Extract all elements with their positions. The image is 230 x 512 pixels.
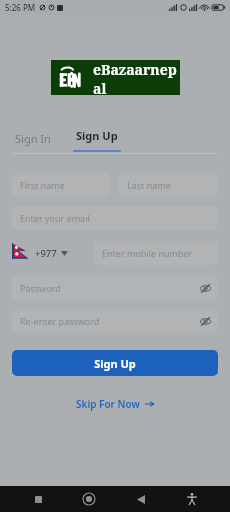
staticText: 5:26 PM	[5, 2, 36, 13]
button[interactable]: Recents	[25, 486, 51, 512]
staticText: Sign Up	[94, 356, 136, 371]
button[interactable]: Back	[128, 486, 154, 512]
staticText: Re-enter password	[20, 315, 100, 327]
button[interactable]: Enter mobile number	[94, 241, 218, 265]
staticText: Enter mobile number	[102, 247, 193, 259]
button[interactable]: Sign Up	[72, 124, 122, 147]
button[interactable]: Re-enter password	[12, 309, 218, 333]
button[interactable]: Home	[76, 486, 102, 512]
button[interactable]: Show password	[197, 313, 213, 329]
staticText: Skip For Now	[76, 397, 140, 411]
staticText: First name	[20, 179, 65, 191]
button[interactable]: Enter your email	[12, 206, 218, 230]
staticText: eBazaarnepal	[93, 60, 180, 95]
button[interactable]: Sign Up	[12, 350, 218, 376]
staticText: +977	[35, 247, 57, 260]
button[interactable]: Show password	[197, 280, 213, 296]
button[interactable]: Select country code	[12, 239, 90, 267]
button[interactable]: Accessibility	[179, 486, 205, 512]
staticText: Sign Up	[76, 128, 118, 143]
staticText: Sign In	[15, 131, 51, 146]
button[interactable]: Password	[12, 276, 218, 300]
button[interactable]: Skip For Now	[68, 393, 162, 415]
button[interactable]: Last name	[119, 173, 218, 197]
button[interactable]: Sign In	[12, 127, 54, 150]
staticText: Password	[20, 282, 61, 294]
staticText: Last name	[127, 179, 171, 191]
staticText: Enter your email	[20, 212, 90, 224]
button[interactable]: First name	[12, 173, 110, 197]
